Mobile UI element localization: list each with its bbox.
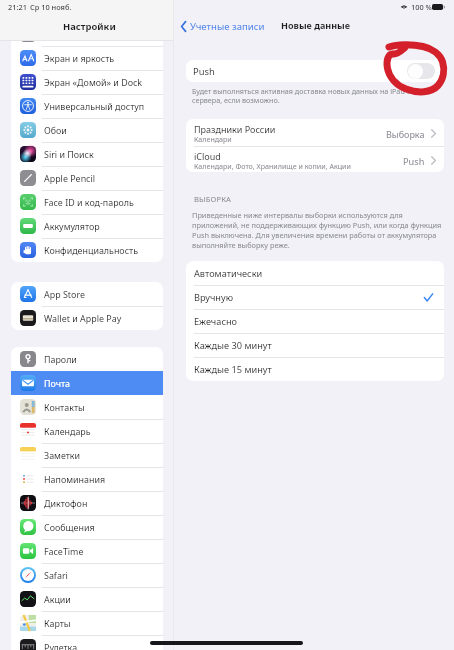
button[interactable]: Экран «Домой» и Dock — [11, 70, 163, 94]
staticText: Универсальный доступ — [44, 100, 145, 112]
staticText: Обои — [44, 124, 67, 136]
staticText: Вручную — [194, 291, 234, 304]
staticText: Экран «Домой» и Dock — [44, 76, 143, 88]
button[interactable]: Wallet и Apple Pay — [11, 306, 163, 330]
button[interactable]: Apple Pencil — [11, 166, 163, 190]
button[interactable]: Push — [407, 63, 435, 79]
button[interactable]: Каждые 30 минут — [186, 333, 444, 357]
staticText: Напоминания — [44, 473, 106, 485]
button[interactable]: Учетные записи — [181, 20, 265, 33]
staticText: Сообщения — [44, 521, 95, 533]
button[interactable]: Акции — [11, 587, 163, 611]
button[interactable]: Почта — [11, 371, 163, 395]
staticText: Конфиденциальность — [44, 244, 139, 256]
staticText: Автоматически — [194, 267, 263, 280]
staticText: ВЫБОРКА — [194, 194, 232, 204]
staticText: Календарь — [44, 425, 91, 437]
button[interactable]: App Store — [11, 282, 163, 306]
button[interactable]: Заметки — [11, 443, 163, 467]
staticText: Акции — [44, 593, 71, 605]
staticText: Siri и Поиск — [44, 148, 94, 160]
staticText: Safari — [44, 569, 68, 581]
staticText: Рулетка — [44, 641, 78, 650]
staticText: Каждые 15 минут — [194, 363, 272, 376]
staticText: Apple Pencil — [44, 172, 95, 184]
staticText: Почта — [44, 377, 71, 389]
button[interactable]: Face ID и код-пароль — [11, 190, 163, 214]
staticText: Новые данные — [281, 19, 351, 31]
button[interactable]: Аккумулятор — [11, 214, 163, 238]
button[interactable]: Пароли — [11, 347, 163, 371]
button[interactable]: Контакты — [11, 395, 163, 419]
staticText: Push — [193, 65, 215, 78]
button[interactable]: Push — [186, 60, 444, 82]
button[interactable]: Ежечасно — [186, 309, 444, 333]
staticText: Учетные записи — [190, 20, 265, 33]
button[interactable]: Праздники России — [186, 119, 444, 146]
button[interactable]: Каждые 15 минут — [186, 357, 444, 381]
staticText: Пароли — [44, 353, 77, 365]
button[interactable]: Вручную — [186, 285, 444, 309]
button[interactable]: Конфиденциальность — [11, 238, 163, 262]
button[interactable]: FaceTime — [11, 539, 163, 563]
staticText: Календари, Фото, Хранилище и копии, Акци… — [194, 161, 351, 171]
button[interactable]: Календарь — [11, 419, 163, 443]
button[interactable]: Универсальный доступ — [11, 94, 163, 118]
button[interactable]: Siri и Поиск — [11, 142, 163, 166]
staticText: Ежечасно — [194, 315, 238, 328]
staticText: Календари — [194, 134, 232, 144]
staticText: Аккумулятор — [44, 220, 100, 232]
staticText: Диктофон — [44, 497, 88, 509]
button[interactable]: Обои — [11, 118, 163, 142]
staticText: iCloud — [194, 150, 221, 162]
staticText: Настройки — [63, 20, 116, 33]
staticText: Будет выполняться активная доставка новы… — [192, 86, 411, 105]
staticText: Заметки — [44, 449, 81, 461]
staticText: Wallet и Apple Pay — [44, 312, 122, 324]
button[interactable]: Карты — [11, 611, 163, 635]
staticText: Выборка — [386, 128, 425, 140]
button[interactable]: Safari — [11, 563, 163, 587]
staticText: Push — [403, 155, 425, 168]
staticText: FaceTime — [44, 545, 84, 557]
staticText: Каждые 30 минут — [194, 339, 272, 352]
button[interactable]: Рулетка — [11, 635, 163, 650]
button[interactable]: Диктофон — [11, 491, 163, 515]
staticText: Контакты — [44, 401, 85, 413]
button[interactable]: iCloud — [186, 147, 444, 171]
button[interactable]: Сообщения — [11, 515, 163, 539]
staticText: Face ID и код-пароль — [44, 196, 134, 208]
button[interactable]: Экран и яркость — [11, 46, 163, 70]
staticText: Карты — [44, 617, 71, 629]
staticText: Приведенные ниже интервалы выборки испол… — [192, 210, 442, 250]
staticText: 21:21 — [8, 2, 27, 12]
staticText: Праздники России — [194, 123, 276, 135]
button[interactable]: Автоматически — [186, 261, 444, 285]
button[interactable]: Напоминания — [11, 467, 163, 491]
staticText: Ср 10 нояб. — [30, 2, 72, 12]
staticText: Экран и яркость — [44, 52, 115, 64]
staticText: 100 % — [411, 2, 432, 12]
staticText: App Store — [44, 288, 85, 300]
